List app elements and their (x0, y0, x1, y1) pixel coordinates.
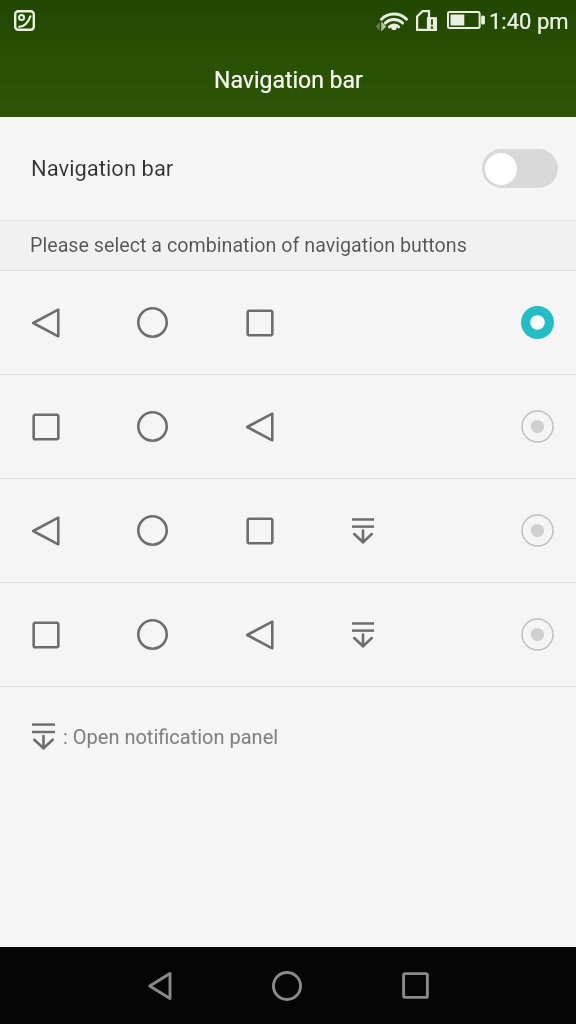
staticText: Navigation bar (214, 67, 363, 94)
button[interactable] (0, 375, 576, 478)
button[interactable]: Recent apps (360, 947, 470, 1024)
button[interactable] (0, 583, 576, 686)
button[interactable]: Back (105, 947, 215, 1024)
button[interactable] (0, 479, 576, 582)
staticText: : Open notification panel (63, 725, 279, 748)
staticText: 1:40 pm (489, 9, 569, 35)
button[interactable]: Navigation bar (0, 117, 576, 220)
button[interactable] (0, 271, 576, 374)
button[interactable]: Home (232, 947, 342, 1024)
staticText: Please select a combination of navigatio… (30, 234, 467, 257)
staticText: Navigation bar (31, 156, 174, 182)
